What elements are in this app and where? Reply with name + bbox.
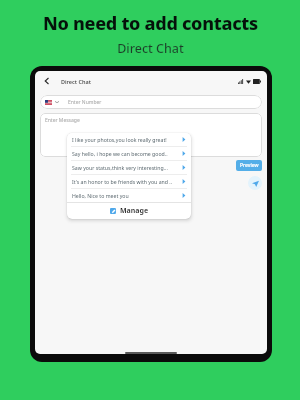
staticText: Saw your status,think very interesting..… xyxy=(72,164,179,171)
button[interactable]: I like your photos,you look really great… xyxy=(67,133,191,146)
button[interactable]: Enter Message xyxy=(40,113,262,157)
button[interactable]: Hello, Nice to meet you xyxy=(67,189,191,202)
staticText: I like your photos,you look really great… xyxy=(72,136,179,143)
button[interactable]: Back xyxy=(41,75,53,87)
button[interactable]: Enter Number xyxy=(40,95,262,109)
button[interactable]: Saw your status,think very interesting..… xyxy=(67,161,191,174)
button[interactable]: Preview xyxy=(236,160,262,171)
staticText: Direct Chat xyxy=(117,40,184,57)
staticText: Enter Message xyxy=(45,117,80,124)
staticText: Say hello, i hope we can become good.. xyxy=(72,150,179,157)
staticText: Preview xyxy=(240,162,259,169)
staticText: Manage xyxy=(120,206,149,216)
staticText: No need to add contacts xyxy=(43,11,258,36)
staticText: It's an honor to be friends with you and… xyxy=(72,178,179,185)
button[interactable]: Send xyxy=(248,176,262,190)
staticText: Direct Chat xyxy=(61,78,91,85)
staticText: Enter Number xyxy=(68,99,102,106)
button[interactable]: It's an honor to be friends with you and… xyxy=(67,175,191,188)
button[interactable]: Say hello, i hope we can become good.. xyxy=(67,147,191,160)
button[interactable]: Manage xyxy=(67,203,191,219)
staticText: Hello, Nice to meet you xyxy=(72,192,179,199)
